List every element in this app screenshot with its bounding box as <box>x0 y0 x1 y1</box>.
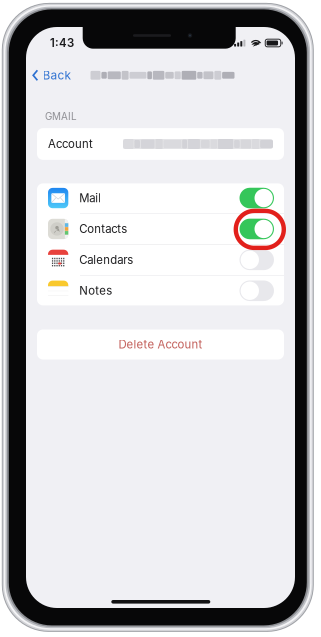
button[interactable]: Contacts <box>37 214 284 244</box>
staticText: Mail <box>79 191 101 205</box>
staticText: Notes <box>79 284 112 298</box>
staticText: Account <box>48 137 93 151</box>
button[interactable]: Mail <box>37 183 284 213</box>
staticText: GMAIL <box>45 110 77 122</box>
button[interactable]: Delete Account <box>37 329 284 359</box>
button[interactable]: Back <box>26 61 79 89</box>
button[interactable]: Notes <box>37 276 284 306</box>
staticText: Calendars <box>79 253 133 267</box>
staticText: Delete Account <box>118 338 202 351</box>
button[interactable]: Calendars <box>37 245 284 275</box>
staticText: 1:43 <box>50 36 74 50</box>
staticText: Contacts <box>79 222 127 236</box>
staticText: Back <box>43 68 72 82</box>
